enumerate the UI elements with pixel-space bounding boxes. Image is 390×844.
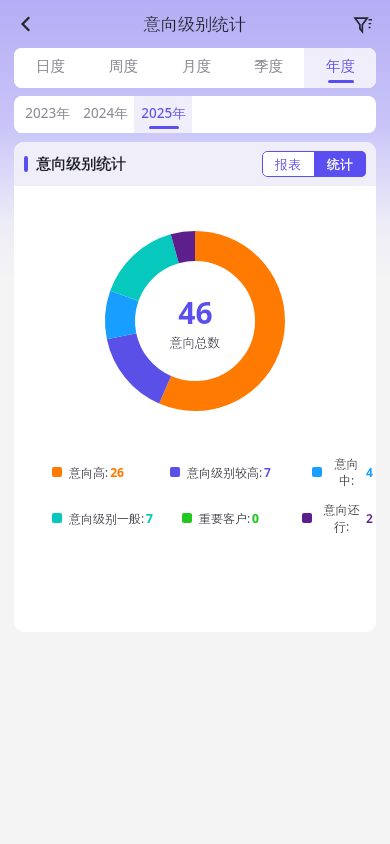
staticText: 46 — [178, 292, 213, 333]
staticText: 意向高: — [67, 464, 110, 480]
staticText: 意向总数 — [170, 335, 220, 351]
button[interactable]: 季度 — [232, 48, 304, 88]
button[interactable]: 意向中: — [312, 456, 366, 488]
staticText: 周度 — [109, 57, 138, 75]
staticText: 26 — [110, 464, 124, 480]
staticText: 统计 — [327, 156, 353, 172]
staticText: 意向级别较高: — [185, 464, 264, 480]
button[interactable]: 意向级别一般: — [52, 510, 182, 526]
staticText: 7 — [146, 510, 153, 526]
staticText: 2025年 — [141, 104, 186, 122]
staticText: 年度 — [326, 57, 355, 75]
staticText: 2023年 — [25, 104, 70, 122]
button[interactable]: 意向级别较高: — [170, 464, 312, 480]
staticText: 0 — [252, 510, 259, 526]
button[interactable]: 2024年 — [76, 96, 134, 133]
staticText: 意向还行: — [317, 502, 366, 534]
staticText: 重要客户: — [197, 510, 252, 526]
button[interactable]: 年度 — [304, 48, 376, 88]
button[interactable]: 2025年 — [134, 96, 192, 133]
staticText: 意向中: — [327, 456, 366, 488]
staticText: 季度 — [254, 57, 283, 75]
staticText: 报表 — [275, 156, 301, 172]
button[interactable]: 重要客户: — [182, 510, 302, 526]
staticText: 意向级别统计 — [144, 14, 246, 35]
staticText: 7 — [264, 464, 271, 480]
staticText: 日度 — [36, 57, 65, 75]
button[interactable]: 2023年 — [18, 96, 76, 133]
staticText: 月度 — [182, 57, 211, 75]
staticText: 2024年 — [83, 104, 128, 122]
button[interactable]: Filter — [342, 3, 384, 45]
staticText: 意向级别统计 — [36, 155, 126, 174]
staticText: 意向级别一般: — [67, 510, 146, 526]
button[interactable]: 月度 — [160, 48, 232, 88]
button[interactable]: 统计 — [314, 151, 366, 177]
button[interactable]: 意向高: — [52, 464, 170, 480]
button[interactable]: 报表 — [262, 151, 314, 177]
button[interactable]: Back — [4, 2, 48, 46]
button[interactable]: 周度 — [87, 48, 160, 88]
button[interactable]: 日度 — [14, 48, 87, 88]
button[interactable]: 意向还行: — [302, 502, 366, 534]
